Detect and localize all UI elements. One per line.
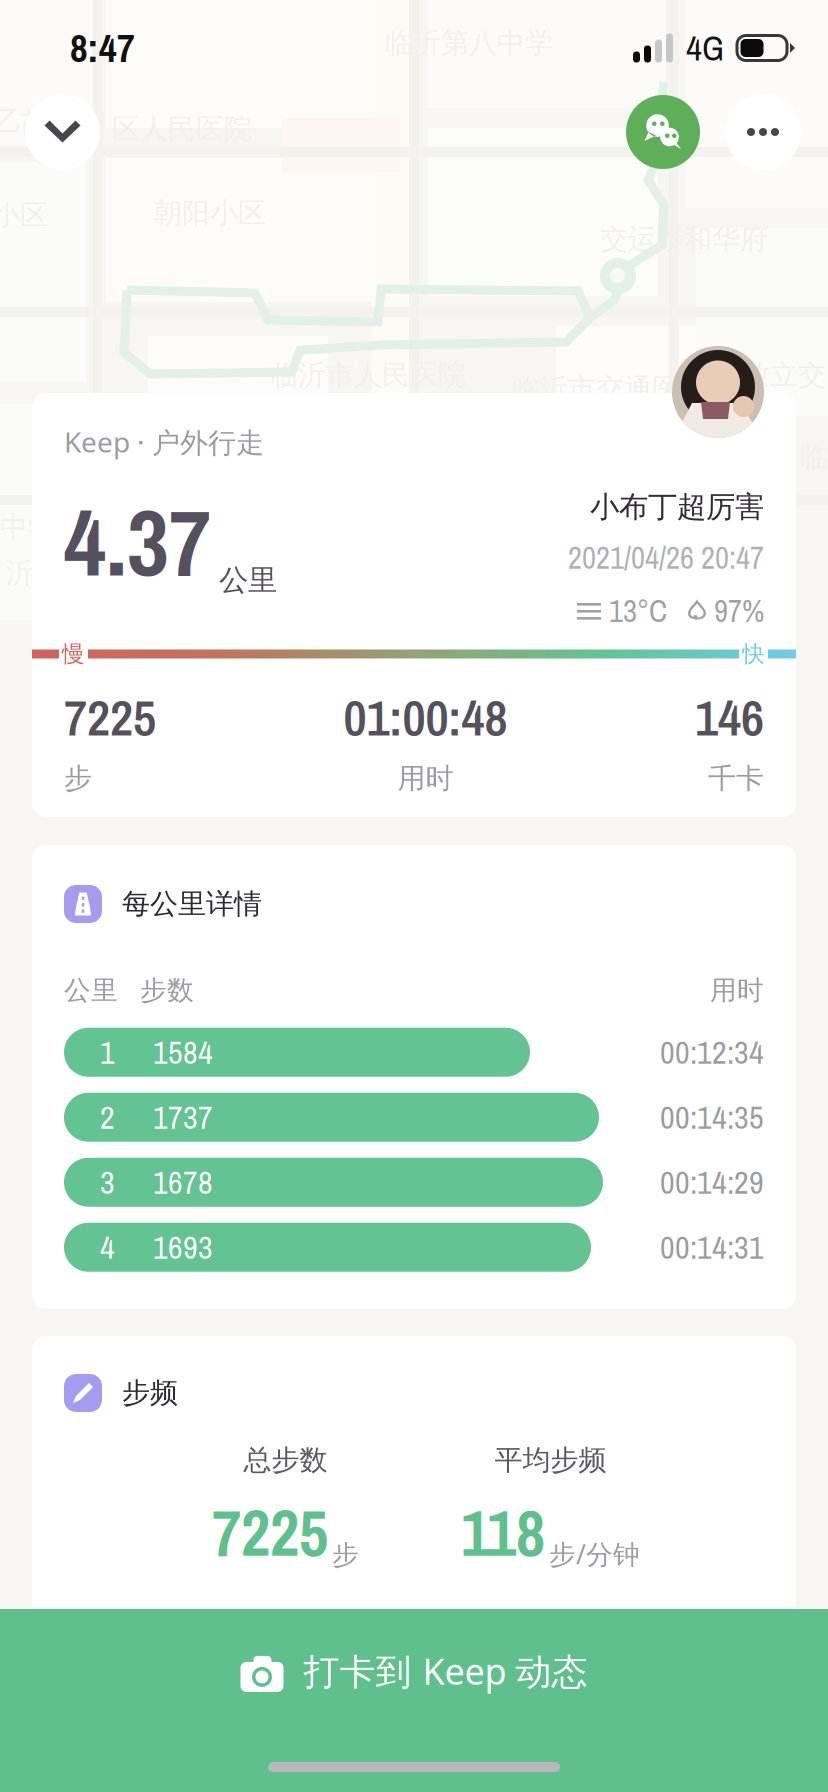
staticText: 交运泰和华府 [600,222,768,256]
staticText: 临沂市交通医院 [512,372,708,406]
staticText: 1584 [153,1031,213,1074]
staticText: 用时 [397,761,453,796]
button[interactable]: More [725,94,801,170]
staticText: 4 [100,1226,115,1269]
staticText: 小布丁超厉害 [590,489,764,525]
staticText: 沂 [6,556,34,590]
staticText: 3 [100,1161,115,1204]
staticText: 公里 [64,974,118,1007]
staticText: 00:14:35 [660,1096,764,1139]
staticText: 慢 [62,640,85,668]
staticText: 大元名筑 [652,514,764,548]
staticText: 4G [686,25,724,71]
staticText: 1 [100,1031,115,1074]
staticText: 步/分钟 [549,1536,640,1572]
staticText: 00:14:31 [660,1226,764,1269]
staticText: 朝阳小区 [154,196,266,230]
staticText: 01:00:48 [343,683,507,751]
staticText: 用时 [710,974,764,1007]
staticText: 打卡到 Keep 动态 [303,1647,587,1695]
staticText: 千卡 [708,761,764,796]
staticText: 1737 [153,1096,213,1139]
staticText: 步频 [122,1376,178,1410]
staticText: 解放立交 [714,358,826,392]
staticText: 118 [461,1489,545,1576]
staticText: 7225 [64,683,156,751]
staticText: 临沂市人民医院 [270,358,466,392]
staticText: 乙故居 [0,104,78,138]
staticText: 146 [695,683,764,751]
staticText: 97% [714,590,764,632]
staticText: Keep · 户外行走 [64,423,264,460]
staticText: 总步数 [243,1443,327,1477]
staticText: 步 [64,761,92,796]
staticText: 7225 [212,1489,328,1576]
staticText: 临沂第八中学 [385,26,553,60]
staticText: 平均步频 [494,1443,606,1477]
staticText: 4.37 [64,480,211,604]
button[interactable]: Collapse [25,94,100,169]
staticText: 区人民医院 [112,112,252,146]
staticText: 步数 [140,974,194,1007]
staticText: 00:12:34 [660,1031,764,1074]
staticText: 步 [332,1539,359,1572]
staticText: 1678 [153,1161,213,1204]
button[interactable]: Share to WeChat [626,95,700,169]
staticText: 快 [742,640,765,668]
staticText: 2 [100,1096,115,1139]
button[interactable]: 打卡到 Keep 动态 [0,1609,828,1792]
staticText: 13°C [609,590,667,632]
staticText: 小区 [0,198,48,232]
staticText: 8:47 [70,22,135,74]
staticText: 公里 [219,562,277,598]
staticText: 2021/04/26 20:47 [568,537,764,578]
staticText: 00:14:29 [660,1161,764,1204]
staticText: 1693 [153,1226,213,1269]
staticText: 中学 [0,510,56,544]
staticText: 每公里详情 [122,887,262,921]
